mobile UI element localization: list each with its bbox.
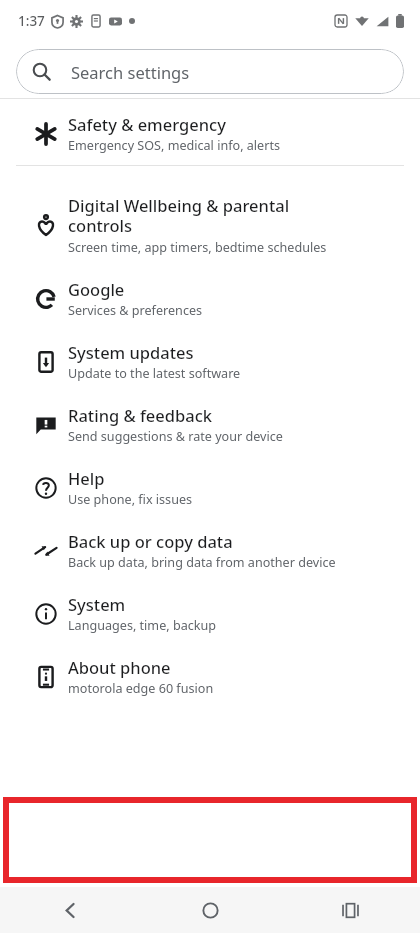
button[interactable]: Digital Wellbeing and parental controls xyxy=(0,183,420,267)
staticText: Send suggestions & rate your device xyxy=(68,428,283,445)
staticText: 1:37 xyxy=(18,12,45,30)
button[interactable]: System updates xyxy=(0,330,420,393)
staticText: Rating & feedback xyxy=(68,404,213,426)
other: Safety and emergency xyxy=(35,123,57,145)
button[interactable]: Safety and emergency xyxy=(0,102,420,165)
staticText: Help xyxy=(68,467,105,489)
staticText: motorola edge 60 fusion xyxy=(68,680,214,697)
other: System updates xyxy=(35,351,57,373)
staticText: System xyxy=(68,593,126,615)
other: Google xyxy=(35,288,57,310)
staticText: Languages, time, backup xyxy=(68,617,217,634)
button[interactable]: Recents xyxy=(280,887,420,933)
other: About phone xyxy=(35,666,57,688)
staticText: System updates xyxy=(68,341,194,363)
button[interactable]: Google xyxy=(0,267,420,330)
other: Back up or copy data xyxy=(35,540,57,562)
button[interactable]: Rating and feedback xyxy=(0,393,420,456)
button[interactable]: Help xyxy=(0,456,420,519)
staticText: Digital Wellbeing & parental controls xyxy=(68,194,338,237)
staticText: Emergency SOS, medical info, alerts xyxy=(68,137,280,154)
button[interactable]: Home xyxy=(140,887,280,933)
staticText: Search settings xyxy=(71,61,190,83)
staticText: Safety & emergency xyxy=(68,113,226,135)
button[interactable]: Search settings xyxy=(16,49,404,94)
other: System xyxy=(35,603,57,625)
staticText: Screen time, app timers, bedtime schedul… xyxy=(68,239,327,256)
staticText: About phone xyxy=(68,656,171,678)
other: Digital Wellbeing and parental controls xyxy=(35,214,57,236)
staticText: Back up or copy data xyxy=(68,530,233,552)
button[interactable]: Back xyxy=(0,887,140,933)
button[interactable]: About phone xyxy=(0,645,420,708)
other: Help xyxy=(35,477,57,499)
button[interactable]: System xyxy=(0,582,420,645)
staticText: Back up data, bring data from another de… xyxy=(68,554,336,571)
staticText: Use phone, fix issues xyxy=(68,491,193,508)
staticText: Update to the latest software xyxy=(68,365,241,382)
button[interactable]: Back up or copy data xyxy=(0,519,420,582)
staticText: Services & preferences xyxy=(68,302,203,319)
other: Rating and feedback xyxy=(35,414,57,436)
staticText: Google xyxy=(68,278,125,300)
